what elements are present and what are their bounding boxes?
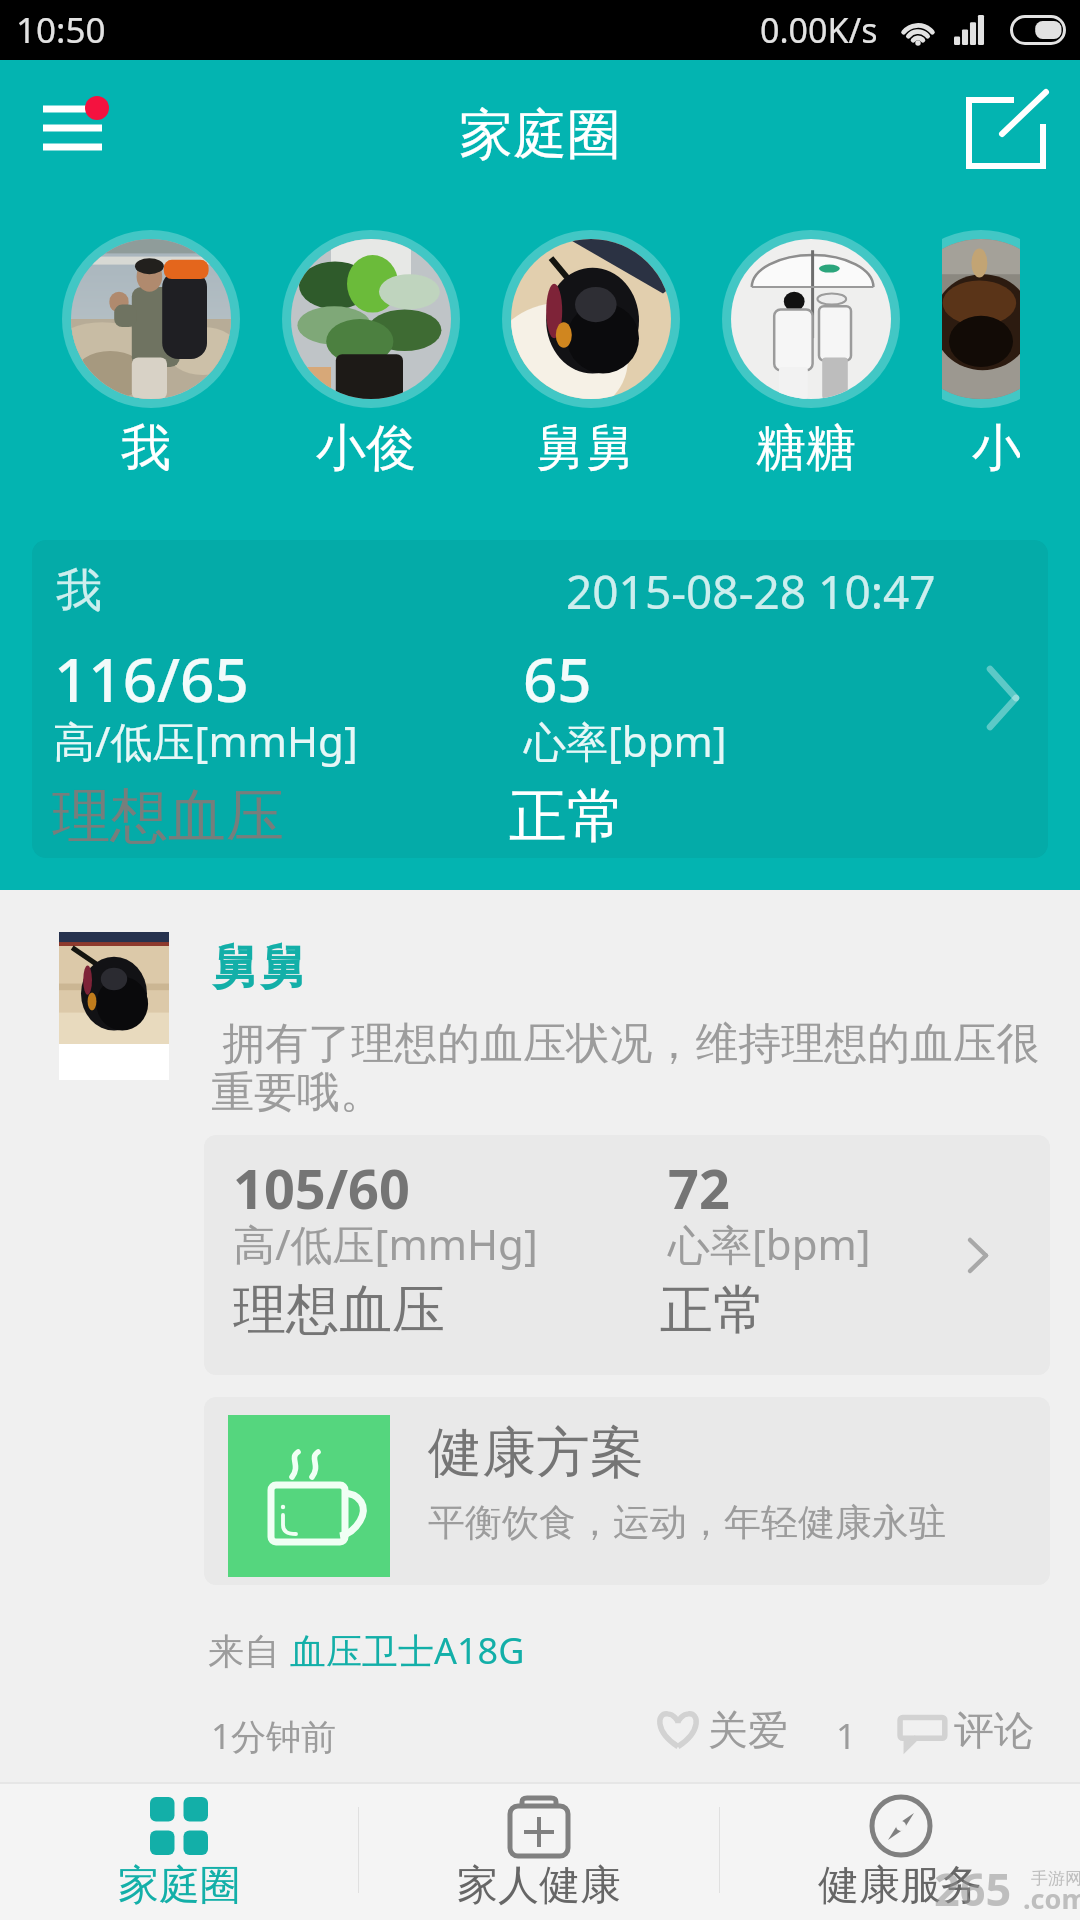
staticText: 65 — [523, 638, 592, 720]
staticText: 舅舅 — [536, 417, 636, 480]
button[interactable]: Menu — [28, 94, 118, 174]
staticText: 家人健康 — [457, 1860, 621, 1912]
staticText: 手游网 — [1031, 1868, 1080, 1889]
staticText: 10:50 — [16, 6, 106, 54]
staticText: 小俊 — [316, 417, 416, 480]
staticText: 0.00K/s — [760, 7, 878, 53]
staticText: 家庭圈 — [459, 101, 621, 169]
staticText: 116/65 — [54, 638, 249, 720]
staticText: 265 — [934, 1858, 1012, 1919]
button[interactable]: 家庭圈 — [0, 1782, 358, 1920]
staticText: 关爱 — [708, 1705, 788, 1755]
staticText: 高/低压[mmHg] — [53, 712, 358, 769]
staticText: 心率[bpm] — [524, 712, 727, 769]
staticText: 正常 — [660, 1277, 766, 1344]
staticText: 高/低压[mmHg] — [233, 1215, 538, 1272]
staticText: 平衡饮食，运动，年轻健康永驻 — [428, 1499, 946, 1546]
button[interactable]: 小 — [942, 230, 1020, 540]
staticText: 正常 — [509, 780, 625, 853]
staticText: 105/60 — [233, 1151, 410, 1225]
staticText: 小 — [972, 417, 1020, 480]
button[interactable]: 血压卫士A18G — [290, 1626, 525, 1675]
staticText: 我 — [56, 562, 102, 620]
button[interactable]: 舅舅 — [502, 230, 680, 540]
staticText: 1 — [836, 1712, 857, 1760]
staticText: 家庭圈 — [118, 1860, 241, 1912]
button[interactable]: New post — [962, 88, 1054, 178]
staticText: 2015-08-28 10:47 — [566, 560, 936, 623]
button[interactable]: 健康服务 — [720, 1782, 1080, 1920]
staticText: 糖糖 — [756, 417, 856, 480]
staticText: 1分钟前 — [211, 1712, 337, 1760]
button[interactable]: 关爱 — [652, 1704, 788, 1756]
staticText: 来自 — [208, 1626, 290, 1675]
button[interactable] — [59, 932, 169, 1080]
button[interactable]: 我 — [32, 540, 1048, 858]
button[interactable]: 糖糖 — [722, 230, 900, 540]
button[interactable]: 家人健康 — [359, 1782, 719, 1920]
staticText: 理想血压 — [233, 1277, 445, 1344]
staticText: 评论 — [954, 1705, 1034, 1755]
staticText: 72 — [668, 1151, 730, 1225]
button[interactable]: 健康方案 — [204, 1397, 1050, 1585]
staticText: 心率[bpm] — [668, 1215, 871, 1272]
staticText: 我 — [121, 417, 171, 480]
button[interactable]: 舅舅 — [212, 938, 308, 998]
button[interactable]: 小俊 — [282, 230, 460, 540]
button[interactable]: 105/60 — [204, 1135, 1050, 1375]
staticText: .com — [1023, 1880, 1080, 1917]
staticText: 健康方案 — [428, 1419, 644, 1487]
button[interactable]: 评论 — [898, 1704, 1034, 1756]
staticText: 理想血压 — [52, 780, 284, 853]
staticText: 拥有了理想的血压状况，维持理想的血压很重要哦。 — [211, 1012, 1047, 1119]
staticText: 健康服务 — [818, 1860, 982, 1912]
button[interactable]: 我 — [62, 230, 240, 540]
